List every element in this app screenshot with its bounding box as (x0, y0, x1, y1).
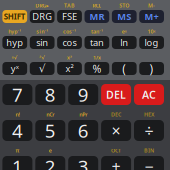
button[interactable]: DEL (101, 84, 131, 105)
staticText: 2 (45, 154, 56, 170)
staticText: ³√ (39, 54, 45, 61)
staticText: SHIFT (4, 11, 26, 22)
button[interactable]: ( (112, 62, 137, 75)
staticText: cos (62, 36, 76, 49)
button[interactable]: DRG (30, 10, 55, 23)
staticText: DEC (111, 111, 121, 118)
staticText: 3 (78, 154, 89, 170)
button[interactable]: x² (57, 62, 82, 75)
staticText: 9 (78, 82, 89, 107)
button[interactable]: 1 (2, 156, 32, 170)
staticText: MR (89, 10, 104, 23)
staticText: sin (36, 36, 48, 49)
button[interactable]: log (139, 36, 164, 49)
button[interactable]: ÷ (134, 120, 164, 141)
staticText: ÷ (144, 120, 153, 141)
staticText: DEL (106, 87, 126, 102)
staticText: nCr (46, 111, 54, 118)
button[interactable]: % (84, 62, 109, 75)
button[interactable]: 5 (35, 120, 65, 141)
staticText: MS (117, 10, 131, 23)
staticText: cos⁻¹ (63, 28, 76, 35)
staticText: % (92, 61, 101, 76)
button[interactable]: 9 (68, 84, 98, 105)
button[interactable]: cos (57, 36, 82, 49)
staticText: 1 (12, 154, 23, 170)
staticText: hyp⁻¹ (8, 28, 21, 35)
staticText: 6 (78, 118, 89, 143)
staticText: e (49, 147, 52, 154)
button[interactable]: 4 (2, 120, 32, 141)
staticText: TAB (64, 2, 75, 9)
staticText: BIN (144, 147, 154, 154)
button[interactable]: 7 (2, 84, 32, 105)
staticText: × (112, 120, 121, 141)
button[interactable]: × (101, 120, 131, 141)
staticText: OCT (111, 147, 121, 154)
staticText: x² (65, 62, 73, 75)
button[interactable]: AC (134, 84, 164, 105)
button[interactable]: SHIFT (2, 10, 27, 23)
staticText: M- (148, 2, 155, 9)
staticText: HEX (144, 111, 154, 118)
staticText: 10ˣ (148, 28, 156, 35)
staticText: x³ (67, 54, 72, 61)
staticText: ) (150, 60, 154, 76)
button[interactable]: 6 (68, 120, 98, 141)
staticText: ( (122, 60, 126, 76)
staticText: tan (90, 36, 104, 49)
button[interactable]: MS (112, 10, 137, 23)
staticText: RCL (92, 2, 101, 9)
button[interactable]: FSE (57, 10, 82, 23)
button[interactable]: 3 (68, 156, 98, 170)
staticText: nPr (79, 111, 87, 118)
button[interactable]: + (101, 156, 131, 170)
button[interactable]: ) (139, 62, 164, 75)
staticText: M+ (145, 10, 159, 23)
staticText: 7 (12, 82, 23, 107)
staticText: DRG (32, 10, 52, 23)
staticText: hyp (6, 36, 23, 49)
staticText: FSE (62, 10, 77, 23)
staticText: AC (142, 87, 156, 102)
staticText: 1/x (93, 54, 101, 61)
staticText: ˣ√ (12, 54, 18, 61)
staticText: STO (119, 2, 129, 9)
button[interactable]: 8 (35, 84, 65, 105)
button[interactable]: hyp (2, 36, 27, 49)
staticText: ln (120, 36, 128, 49)
staticText: tan⁻¹ (91, 28, 103, 35)
button[interactable]: − (134, 156, 164, 170)
button[interactable]: 2 (35, 156, 65, 170)
staticText: sin⁻¹ (36, 28, 48, 35)
button[interactable]: √ (30, 62, 55, 75)
staticText: 5 (45, 118, 56, 143)
button[interactable]: yˣ (2, 62, 27, 75)
staticText: n! (15, 111, 19, 118)
button[interactable]: tan (84, 36, 109, 49)
staticText: √ (39, 62, 46, 74)
button[interactable]: sin (30, 36, 55, 49)
staticText: 4 (12, 118, 23, 143)
staticText: eˣ (122, 28, 127, 35)
button[interactable]: ln (112, 36, 137, 49)
staticText: log (145, 36, 159, 49)
button[interactable]: M+ (139, 10, 164, 23)
button[interactable]: MR (84, 10, 109, 23)
staticText: DRG▸ (35, 2, 49, 9)
staticText: − (144, 156, 153, 170)
staticText: 8 (45, 82, 56, 107)
staticText: π (15, 147, 19, 154)
staticText: + (112, 156, 121, 170)
staticText: yˣ (11, 62, 19, 75)
